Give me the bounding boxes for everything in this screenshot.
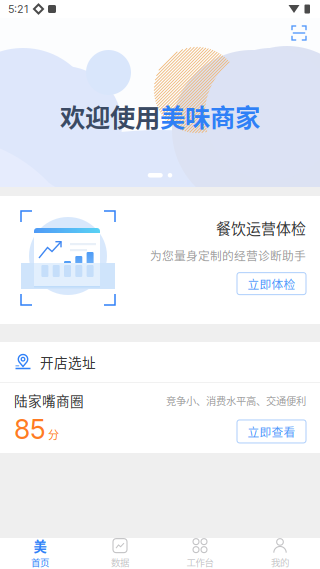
staticText: 美	[33, 536, 46, 555]
staticText: 我的	[271, 555, 289, 569]
button[interactable]: 我的	[240, 538, 320, 569]
button[interactable]: 立即查看	[237, 420, 306, 443]
staticText: 美味商家	[160, 98, 260, 134]
button[interactable]: 工作台	[160, 538, 240, 569]
button[interactable]: 数据	[80, 538, 160, 569]
staticText: 数据	[111, 555, 129, 569]
staticText: 立即体检	[247, 275, 295, 292]
staticText: 首页	[31, 555, 49, 569]
staticText: 欢迎使用	[60, 98, 160, 134]
staticText: 陆家嘴商圈	[14, 390, 84, 410]
staticText: 立即查看	[247, 423, 295, 440]
button[interactable]: 美	[0, 538, 80, 569]
staticText: 85	[14, 413, 46, 445]
button[interactable]: 扫一扫	[285, 19, 313, 47]
staticText: 为您量身定制的经营诊断助手	[150, 247, 306, 264]
staticText: 竞争小、消费水平高、交通便利	[166, 393, 306, 408]
button[interactable]: 立即体检	[237, 273, 306, 295]
staticText: 工作台	[186, 555, 213, 569]
staticText: 分	[48, 426, 59, 442]
staticText: 开店选址	[40, 352, 96, 372]
staticText: 5:21	[8, 2, 28, 15]
staticText: 餐饮运营体检	[216, 217, 306, 239]
